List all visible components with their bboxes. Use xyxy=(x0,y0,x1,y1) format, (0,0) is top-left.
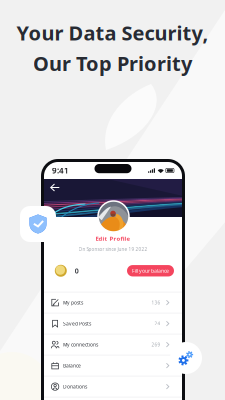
staticText: My posts xyxy=(63,299,83,306)
button[interactable]: My connections xyxy=(44,334,182,355)
button[interactable]: Donations xyxy=(44,376,182,397)
button[interactable]: Back xyxy=(48,180,62,194)
button[interactable]: Saved Posts xyxy=(44,313,182,334)
button[interactable]: My posts xyxy=(44,292,182,313)
staticText: Fill your balance xyxy=(132,267,169,274)
staticText: Edit Profile xyxy=(95,234,130,242)
staticText: Your Data Security, xyxy=(16,19,208,46)
staticText: 136 xyxy=(151,299,160,306)
staticText: My connections xyxy=(63,341,98,348)
staticText: 269 xyxy=(151,341,160,348)
staticText: Our Top Priority xyxy=(33,50,192,77)
staticText: Saved Posts xyxy=(63,320,91,327)
staticText: 9:41 xyxy=(52,165,69,176)
staticText: On Sponsor since June 19 2022 xyxy=(78,246,147,252)
staticText: Donations xyxy=(63,383,87,390)
staticText: 0 xyxy=(75,266,79,275)
button[interactable]: Fill your balance xyxy=(127,265,174,276)
button[interactable]: Balance xyxy=(44,355,182,376)
button[interactable]: Data security xyxy=(20,206,56,242)
staticText: Balance xyxy=(63,362,81,369)
button[interactable]: Settings xyxy=(170,342,202,374)
staticText: 24 xyxy=(154,320,160,327)
